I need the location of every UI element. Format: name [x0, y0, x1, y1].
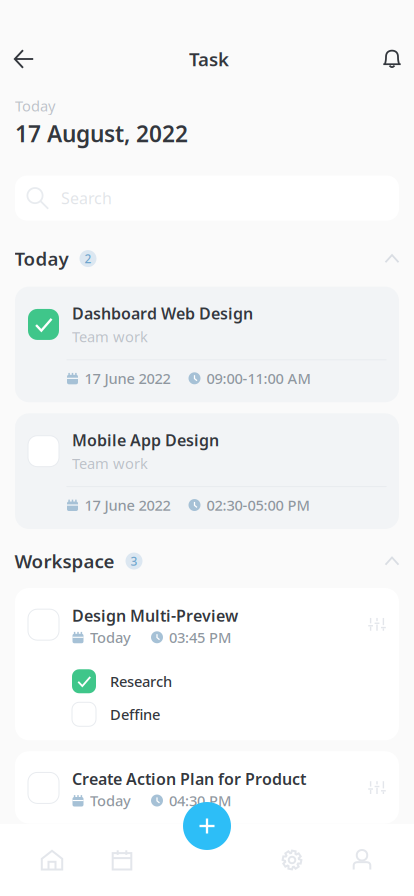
staticText: Design Multi-Preview — [72, 605, 238, 626]
button[interactable]: Research — [72, 669, 384, 693]
button[interactable]: Home — [17, 831, 87, 889]
button[interactable]: Deffine — [72, 702, 384, 726]
staticText: 17 August, 2022 — [15, 118, 188, 149]
staticText: 17 June 2022 — [84, 495, 170, 515]
staticText: Today — [14, 246, 68, 271]
staticText: Deffine — [110, 704, 160, 724]
staticText: Workspace — [14, 549, 114, 573]
staticText: Research — [110, 671, 172, 691]
staticText: Dashboard Web Design — [72, 303, 253, 324]
button[interactable]: Collapse Today — [377, 248, 399, 270]
staticText: Create Action Plan for Product — [72, 768, 306, 789]
button[interactable]: Dashboard Web Design — [15, 287, 399, 402]
staticText: Today — [90, 791, 131, 810]
button[interactable]: Mobile App Design — [15, 413, 399, 529]
staticText: Team work — [72, 327, 148, 346]
staticText: Task — [189, 47, 229, 71]
staticText: 02:30-05:00 PM — [206, 495, 309, 515]
staticText: Search — [61, 187, 112, 209]
staticText: 2 — [84, 251, 91, 266]
button[interactable]: Back — [2, 37, 46, 81]
button[interactable]: Calendar — [87, 831, 157, 889]
staticText: 17 June 2022 — [84, 369, 170, 388]
button[interactable]: Task options — [366, 778, 386, 798]
button[interactable]: Task options — [366, 615, 386, 635]
staticText: Team work — [72, 454, 148, 473]
button[interactable]: Settings — [257, 831, 327, 889]
staticText: Mobile App Design — [72, 429, 219, 450]
staticText: 03:45 PM — [169, 627, 231, 647]
button[interactable]: Profile — [327, 831, 397, 889]
staticText: 04:30 PM — [169, 791, 231, 810]
button[interactable]: Notifications — [372, 37, 412, 81]
staticText: Today — [15, 96, 55, 115]
button[interactable]: Collapse Workspace — [377, 550, 399, 572]
staticText: 09:00-11:00 AM — [206, 369, 310, 388]
staticText: Today — [90, 627, 131, 647]
button[interactable]: Add task — [183, 802, 231, 850]
staticText: 3 — [130, 553, 137, 569]
